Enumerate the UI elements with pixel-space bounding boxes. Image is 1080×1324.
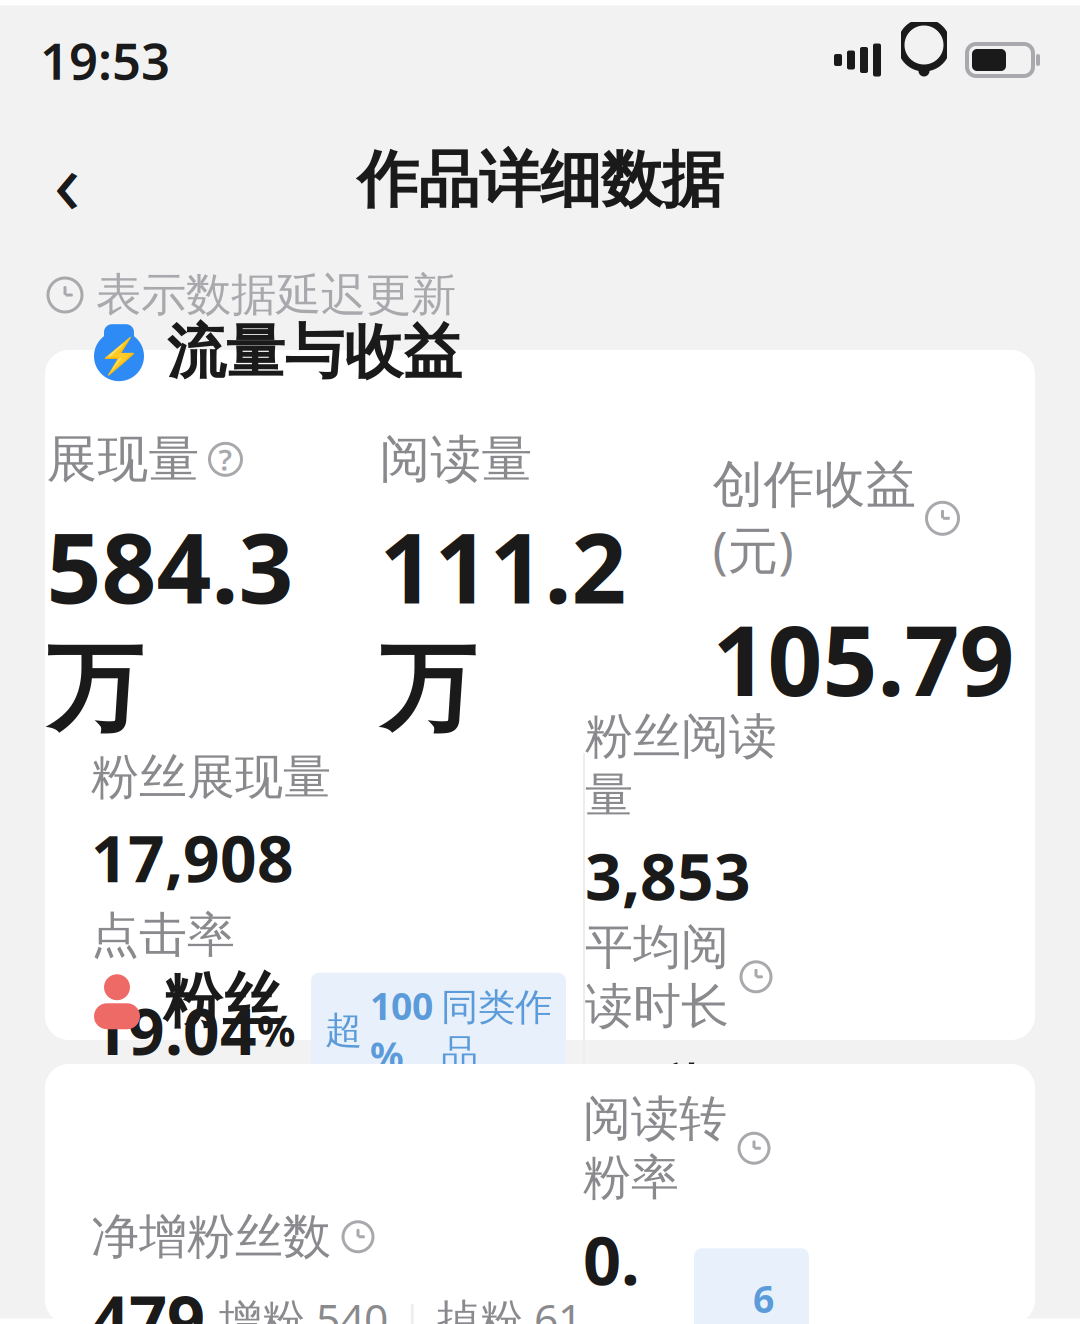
staticText: 流量与收益	[167, 316, 462, 388]
staticText: 111.2万	[379, 502, 626, 748]
button[interactable]: 返回	[22, 135, 112, 225]
staticText: 粉丝	[163, 965, 281, 1037]
staticText: 创作收益(元)	[712, 453, 916, 583]
staticText: 净增粉丝数	[91, 1207, 331, 1266]
staticText: 阅读转粉率	[583, 1089, 727, 1207]
staticText: 粉丝阅读量	[585, 707, 777, 825]
staticText: 秒	[659, 1058, 704, 1114]
staticText: 30	[585, 1044, 659, 1129]
staticText: ‹	[53, 122, 80, 238]
staticText: 作品详细数据	[357, 142, 723, 218]
staticText: 掉粉 61	[437, 1290, 582, 1324]
staticText: 17,908	[91, 815, 294, 900]
staticText: 3,853	[585, 833, 751, 918]
staticText: 479	[91, 1274, 205, 1324]
staticText: 点击率	[91, 906, 235, 965]
staticText: 粉丝展现量	[91, 748, 331, 807]
staticText: ?	[218, 440, 232, 479]
staticText: 584.3万	[46, 502, 293, 748]
staticText: 同类作品	[441, 984, 552, 1076]
staticText: 平均阅读时长	[585, 918, 729, 1036]
staticText: |	[402, 1294, 423, 1324]
staticText: 66%	[753, 1274, 787, 1324]
staticText: ⚡	[97, 336, 140, 376]
staticText: 100%	[370, 981, 433, 1080]
staticText: 0.04	[583, 1215, 640, 1324]
staticText: %	[257, 1002, 295, 1059]
staticText: 105.79	[712, 595, 1014, 722]
staticText: 增粉 540	[219, 1290, 388, 1324]
staticText: 阅读量	[379, 428, 532, 490]
staticText: 超	[325, 1007, 362, 1053]
staticText: 19:53	[40, 26, 170, 94]
staticText: 19.04	[91, 988, 257, 1073]
staticText: 表示数据延迟更新	[96, 267, 456, 323]
staticText: 展现量	[46, 428, 199, 490]
